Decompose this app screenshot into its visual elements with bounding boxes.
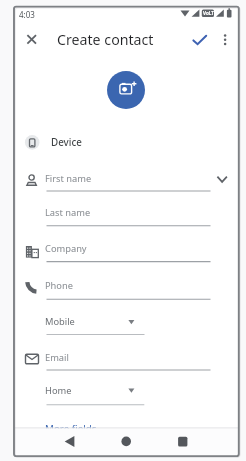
button[interactable] bbox=[20, 27, 44, 51]
button[interactable] bbox=[15, 271, 238, 302]
staticText: Email bbox=[45, 351, 69, 364]
button[interactable] bbox=[188, 29, 212, 53]
button[interactable] bbox=[40, 377, 150, 407]
staticText: Home bbox=[45, 384, 72, 397]
button[interactable] bbox=[15, 234, 238, 265]
staticText: First name bbox=[45, 172, 92, 185]
button[interactable] bbox=[15, 127, 238, 156]
button[interactable] bbox=[214, 29, 236, 53]
button[interactable] bbox=[15, 198, 238, 229]
button[interactable] bbox=[50, 430, 90, 453]
button[interactable] bbox=[211, 165, 237, 191]
button[interactable] bbox=[163, 430, 203, 453]
staticText: 4:03 bbox=[19, 9, 35, 20]
button[interactable] bbox=[40, 414, 160, 428]
staticText: More fields bbox=[45, 422, 97, 435]
button[interactable] bbox=[15, 343, 238, 373]
staticText: Device bbox=[51, 136, 82, 149]
button[interactable] bbox=[15, 163, 238, 194]
button[interactable] bbox=[107, 71, 145, 109]
staticText: VoLTE bbox=[203, 10, 217, 16]
staticText: Create contact bbox=[57, 30, 154, 46]
staticText: Mobile bbox=[45, 315, 75, 328]
button[interactable] bbox=[106, 430, 146, 453]
staticText: Phone bbox=[45, 279, 73, 292]
staticText: Last name bbox=[45, 206, 91, 219]
button[interactable] bbox=[40, 308, 150, 337]
staticText: Company bbox=[45, 242, 87, 255]
